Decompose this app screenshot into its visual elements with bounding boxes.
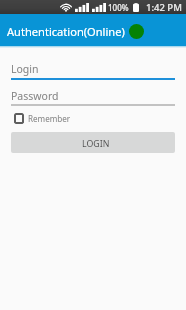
staticText: Login [11,62,39,76]
staticText: LOGIN [82,138,110,150]
button[interactable]: Login [0,60,186,80]
staticText: 100% [108,2,129,13]
staticText: Remember [28,113,71,124]
staticText: Authentication(Online) [7,24,125,39]
button[interactable]: Password [0,87,186,107]
button[interactable]: LOGIN [11,132,175,153]
other: Online status [129,24,144,39]
staticText: Password [11,89,59,103]
staticText: 1:42 PM [146,1,182,14]
button[interactable]: Remember [14,113,71,124]
